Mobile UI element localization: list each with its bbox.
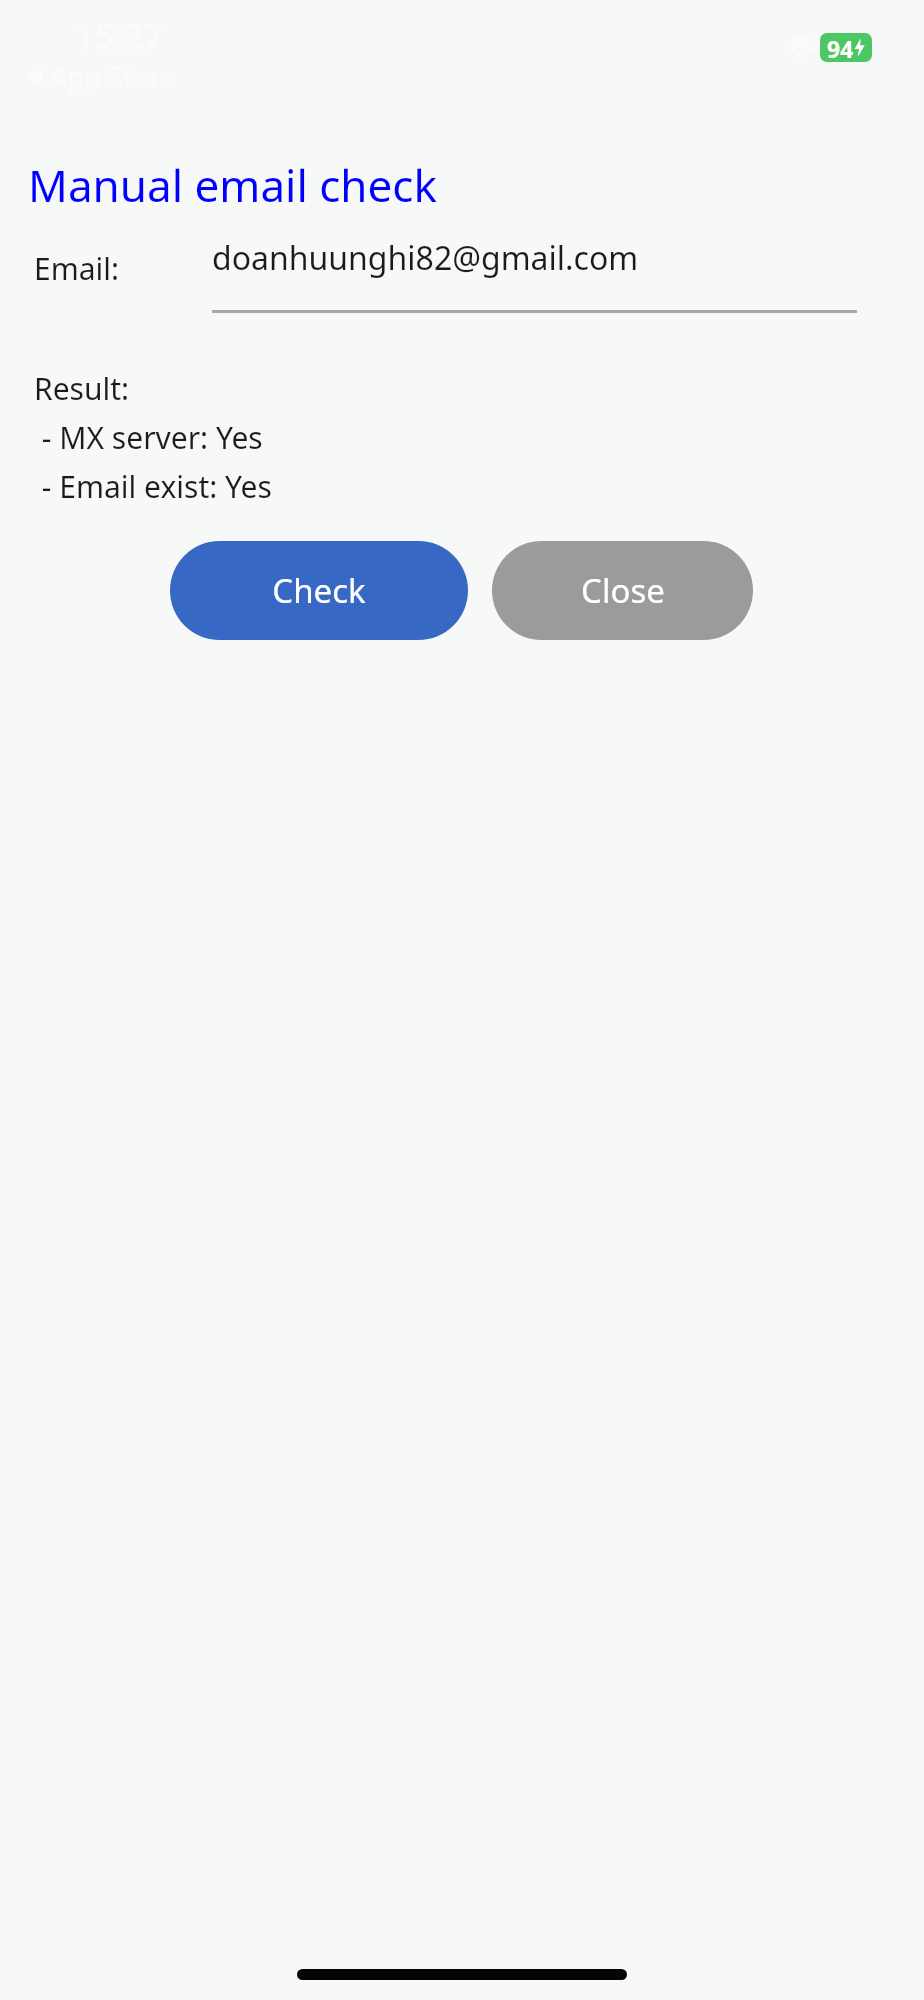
staticText: Manual email check xyxy=(28,155,437,215)
button[interactable]: Check xyxy=(170,541,468,640)
staticText: - MX server: Yes xyxy=(34,417,263,458)
staticText: - Email exist: Yes xyxy=(34,466,272,507)
button[interactable]: Close xyxy=(492,541,753,640)
staticText: doanhuunghi82@gmail.com xyxy=(212,236,639,280)
other: Battery 94 percent charging xyxy=(820,33,872,62)
staticText: 94 xyxy=(827,33,854,62)
staticText: Check xyxy=(272,568,366,613)
staticText: Email: xyxy=(34,248,120,289)
button[interactable]: doanhuunghi82@gmail.com xyxy=(212,236,857,313)
staticText: Close xyxy=(581,568,665,613)
staticText: Result: xyxy=(34,368,130,409)
